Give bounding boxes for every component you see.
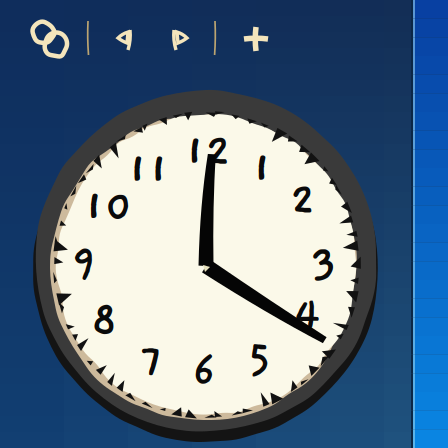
button[interactable]: Add [228, 10, 284, 66]
button[interactable]: Rewind [98, 10, 154, 66]
staticText: 10 [84, 183, 133, 232]
staticText: 7 [140, 336, 163, 385]
staticText: 8 [91, 295, 118, 345]
staticText: 11 [127, 145, 169, 195]
staticText: 2 [290, 176, 316, 225]
staticText: 5 [247, 334, 271, 383]
staticText: 4 [293, 290, 320, 340]
staticText: 1 [251, 144, 272, 194]
button[interactable]: Laps [20, 8, 80, 68]
staticText: 12 [184, 127, 231, 177]
staticText: 9 [72, 237, 97, 286]
staticText: 6 [192, 347, 216, 397]
staticText: 3 [311, 239, 337, 289]
button[interactable]: Fast forward [152, 10, 208, 66]
